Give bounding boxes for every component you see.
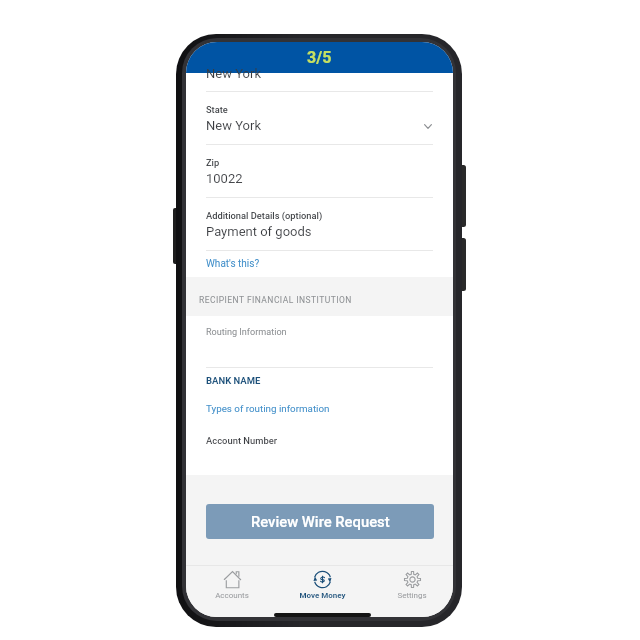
staticText: 10022 — [206, 171, 243, 186]
button[interactable]: Accounts — [201, 566, 263, 600]
button[interactable]: Account Number — [186, 430, 453, 450]
staticText: New York — [206, 66, 261, 81]
staticText: BANK NAME — [206, 375, 261, 386]
staticText: Additional Details (optional) — [206, 210, 323, 221]
staticText: Move Money — [299, 591, 346, 600]
other: Choose state — [424, 124, 432, 129]
staticText: Review Wire Request — [251, 513, 390, 530]
button[interactable]: Move Money — [291, 566, 353, 600]
button[interactable]: BANK NAME — [186, 370, 453, 390]
button[interactable]: Settings — [381, 566, 443, 600]
staticText: State — [206, 104, 228, 115]
button[interactable]: Routing Information — [186, 316, 453, 367]
button[interactable]: Review Wire Request — [206, 504, 434, 539]
button[interactable]: Zip — [186, 145, 453, 197]
staticText: Settings — [397, 591, 427, 600]
other: Move Money — [314, 571, 331, 588]
staticText: Accounts — [215, 591, 249, 600]
other: Accounts — [224, 571, 241, 588]
staticText: Routing Information — [206, 327, 287, 338]
staticText: New York — [206, 118, 261, 133]
other: Settings — [404, 571, 421, 588]
staticText: Payment of goods — [206, 224, 312, 239]
button[interactable]: Additional Details (optional) — [186, 198, 453, 250]
staticText: What's this? — [206, 258, 260, 270]
button[interactable]: What's this? — [186, 251, 453, 277]
button[interactable]: State — [186, 92, 453, 144]
staticText: RECIPIENT FINANCIAL INSTITUTION — [199, 295, 352, 305]
staticText: Account Number — [206, 435, 278, 446]
staticText: Zip — [206, 157, 220, 168]
staticText: 3/5 — [307, 48, 332, 67]
button[interactable]: Types of routing information — [186, 398, 453, 418]
staticText: Types of routing information — [206, 403, 330, 414]
